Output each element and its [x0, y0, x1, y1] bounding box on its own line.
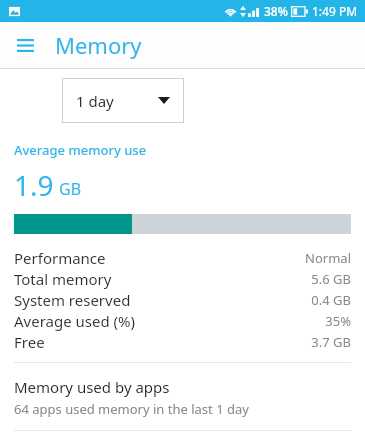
- staticText: Free: [14, 332, 45, 352]
- staticText: GB: [59, 178, 82, 200]
- staticText: 3.7 GB: [311, 333, 351, 351]
- button[interactable]: Total memory: [0, 268, 365, 289]
- staticText: Performance: [14, 248, 106, 268]
- staticText: 1:49 PM: [312, 3, 358, 19]
- staticText: Memory used by apps: [14, 377, 170, 397]
- staticText: 38%: [264, 3, 288, 19]
- staticText: Memory: [55, 30, 142, 60]
- staticText: 1 day: [76, 91, 114, 111]
- button[interactable]: Average used (%): [0, 310, 365, 331]
- button[interactable]: Open navigation menu: [10, 30, 40, 60]
- staticText: 1.9: [14, 166, 54, 204]
- staticText: Normal: [305, 249, 351, 267]
- button[interactable]: 1 day: [62, 78, 184, 123]
- staticText: 35%: [325, 312, 351, 330]
- staticText: Average used (%): [14, 311, 136, 331]
- staticText: Average memory use: [14, 141, 147, 159]
- button[interactable]: Free: [0, 331, 365, 352]
- staticText: 64 apps used memory in the last 1 day: [14, 400, 249, 418]
- staticText: 0.4 GB: [311, 291, 351, 309]
- button[interactable]: System reserved: [0, 289, 365, 310]
- button[interactable]: Performance: [0, 247, 365, 268]
- staticText: System reserved: [14, 290, 131, 310]
- staticText: Total memory: [14, 269, 112, 289]
- staticText: 5.6 GB: [311, 270, 351, 288]
- button[interactable]: Memory used by apps: [0, 363, 365, 430]
